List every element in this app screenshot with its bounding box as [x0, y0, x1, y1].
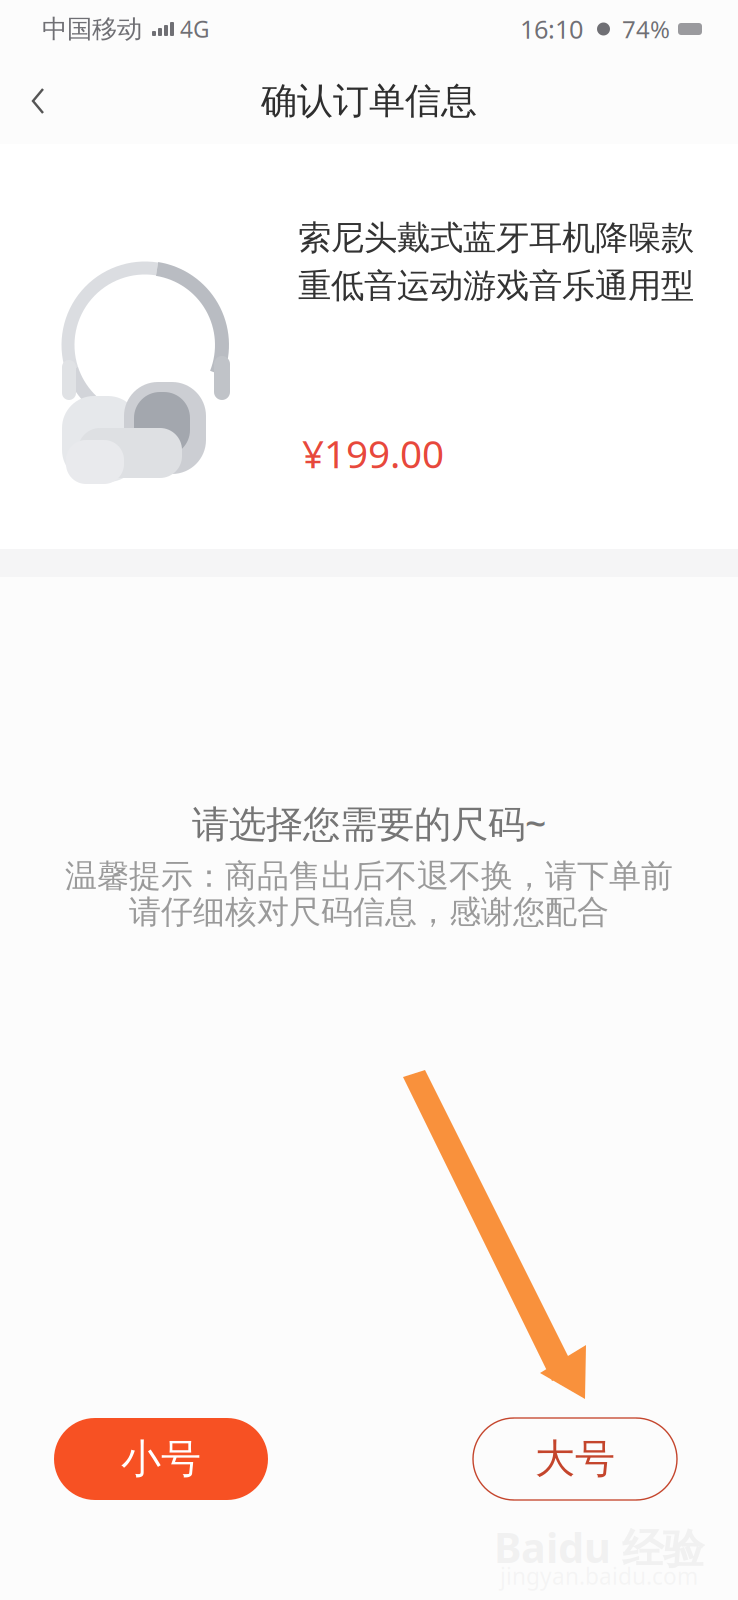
staticText: 大号: [535, 1434, 615, 1483]
staticText: jingyan.baidu.com: [500, 1561, 698, 1591]
button[interactable]: Back: [0, 58, 76, 144]
button[interactable]: 小号: [54, 1418, 268, 1500]
staticText: 确认订单信息: [261, 79, 477, 123]
staticText: 74%: [622, 13, 670, 45]
staticText: 小号: [121, 1434, 201, 1483]
staticText: 温馨提示：商品售出后不退不换，请下单前: [65, 856, 673, 896]
staticText: 索尼头戴式蓝牙耳机降噪款: [298, 217, 694, 258]
staticText: 中国移动: [42, 13, 142, 44]
staticText: 请仔细核对尺码信息，感谢您配合: [129, 892, 609, 932]
staticText: ¥199.00: [302, 428, 444, 479]
staticText: Baidu 经验: [494, 1519, 704, 1574]
staticText: 请选择您需要的尺码~: [192, 798, 546, 848]
staticText: 4G: [180, 14, 210, 44]
button[interactable]: 大号: [473, 1418, 677, 1500]
staticText: 重低音运动游戏音乐通用型: [298, 265, 694, 306]
staticText: 16:10: [520, 12, 583, 46]
